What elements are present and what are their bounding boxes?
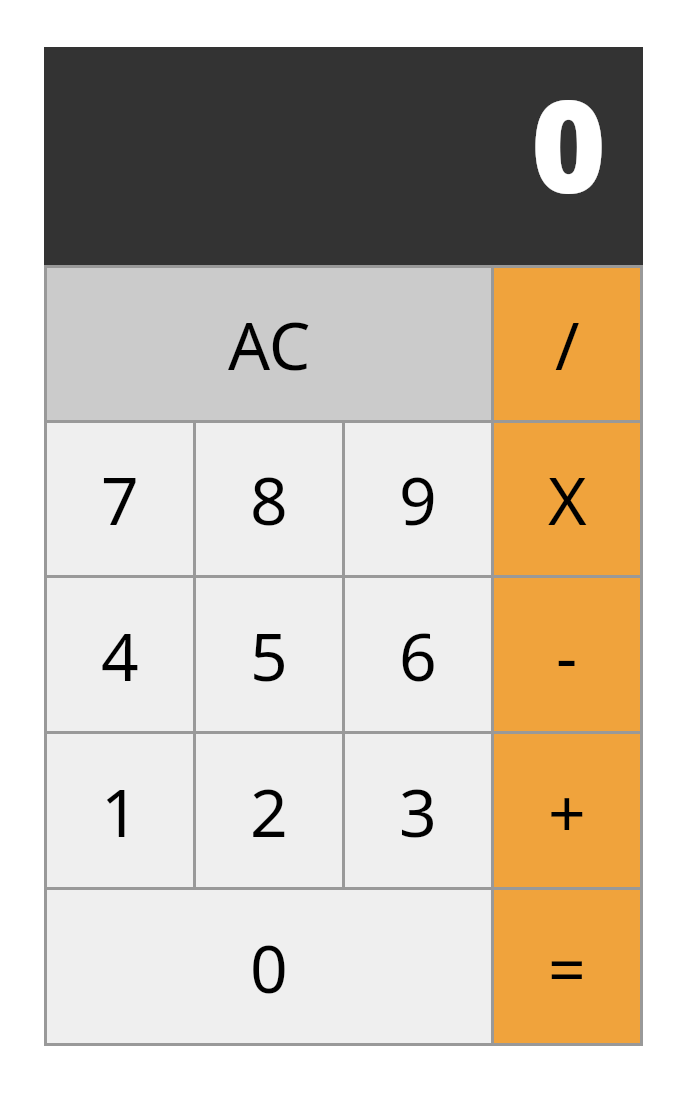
staticText: 7 xyxy=(101,454,139,544)
staticText: - xyxy=(556,610,578,700)
button[interactable]: 5 xyxy=(196,578,342,731)
staticText: 4 xyxy=(101,610,139,700)
staticText: 1 xyxy=(101,766,139,856)
staticText: 2 xyxy=(250,766,288,856)
button[interactable]: 3 xyxy=(345,734,491,887)
button[interactable]: + xyxy=(494,734,640,887)
button[interactable]: X xyxy=(494,423,640,575)
button[interactable]: 1 xyxy=(47,734,193,887)
staticText: AC xyxy=(228,299,311,389)
staticText: 9 xyxy=(399,454,437,544)
button[interactable]: 0 xyxy=(47,890,491,1043)
staticText: 0 xyxy=(531,56,607,230)
staticText: + xyxy=(548,766,586,856)
button[interactable]: 9 xyxy=(345,423,491,575)
button[interactable]: 8 xyxy=(196,423,342,575)
staticText: 3 xyxy=(399,766,437,856)
staticText: 0 xyxy=(250,922,288,1012)
button[interactable]: - xyxy=(494,578,640,731)
button[interactable]: 4 xyxy=(47,578,193,731)
button[interactable]: 2 xyxy=(196,734,342,887)
staticText: = xyxy=(548,922,586,1012)
button[interactable]: / xyxy=(494,268,640,420)
button[interactable]: = xyxy=(494,890,640,1043)
staticText: X xyxy=(548,454,587,544)
button[interactable]: 6 xyxy=(345,578,491,731)
staticText: 6 xyxy=(399,610,437,700)
staticText: 8 xyxy=(250,454,288,544)
staticText: / xyxy=(555,299,580,389)
button[interactable]: 7 xyxy=(47,423,193,575)
staticText: 5 xyxy=(250,610,288,700)
button[interactable]: AC xyxy=(47,268,491,420)
